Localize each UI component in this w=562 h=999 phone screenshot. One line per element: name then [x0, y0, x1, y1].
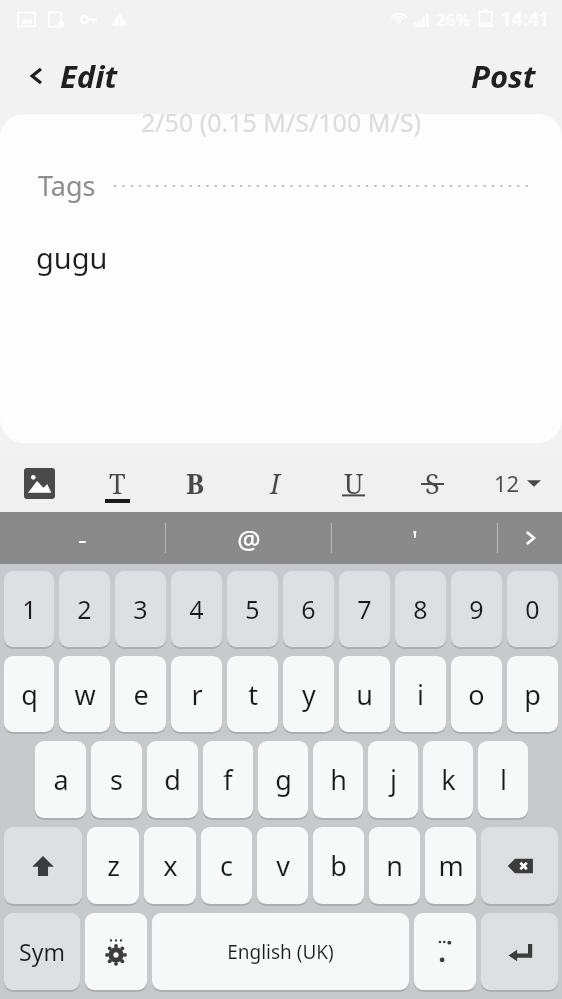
staticText: @ [237, 521, 261, 556]
staticText: j [390, 761, 397, 798]
staticText: S [425, 465, 440, 502]
staticText: l [500, 761, 507, 798]
button[interactable]: S [393, 454, 472, 512]
button[interactable]: s [91, 741, 142, 818]
staticText: gugu [36, 238, 108, 277]
button[interactable]: j [368, 741, 418, 818]
button[interactable]: T [78, 454, 156, 512]
staticText: e [133, 676, 149, 713]
staticText: q [21, 676, 38, 713]
staticText: B [186, 465, 205, 502]
button[interactable]: 7 [339, 571, 390, 647]
button[interactable]: x [144, 827, 196, 904]
staticText: 26% [436, 8, 470, 31]
button[interactable]: U [314, 454, 393, 512]
button[interactable]: v [257, 827, 308, 904]
button[interactable]: b [313, 827, 364, 904]
button[interactable]: More suggestions [498, 512, 562, 564]
staticText: c [220, 847, 233, 884]
button[interactable]: Enter [481, 913, 558, 990]
button[interactable]: y [283, 656, 334, 732]
staticText: w [74, 676, 96, 713]
button[interactable]: B [156, 454, 235, 512]
button[interactable]: l [478, 741, 528, 818]
button[interactable]: Sym [4, 913, 80, 990]
button[interactable]: n [369, 827, 420, 904]
staticText: 1 [22, 592, 37, 626]
button[interactable]: Post [451, 47, 562, 105]
staticText: 6 [301, 592, 316, 626]
staticText: i [417, 676, 424, 713]
staticText: u [356, 676, 373, 713]
staticText: k [441, 761, 456, 798]
staticText: o [468, 676, 485, 713]
button[interactable]: English (UK) [152, 913, 409, 990]
staticText: s [110, 761, 123, 798]
button[interactable]: Shift [4, 827, 82, 904]
button[interactable]: k [423, 741, 473, 818]
button[interactable]: g [258, 741, 308, 818]
button[interactable]: w [59, 656, 110, 732]
other: Back [26, 65, 48, 87]
button[interactable]: d [147, 741, 198, 818]
button[interactable]: a [35, 741, 86, 818]
button[interactable]: 2/50 (0.15 M/S/100 M/S) [0, 114, 562, 443]
button[interactable]: Period [414, 913, 476, 990]
staticText: 14:41 [501, 6, 550, 32]
button[interactable]: p [507, 656, 558, 732]
staticText: ' [412, 521, 418, 556]
staticText: Post [471, 55, 536, 97]
button[interactable]: o [451, 656, 502, 732]
staticText: z [107, 847, 120, 884]
button[interactable]: e [115, 656, 166, 732]
button[interactable]: m [425, 827, 476, 904]
button[interactable]: 6 [283, 571, 334, 647]
button[interactable]: Backspace [481, 827, 558, 904]
button[interactable]: z [87, 827, 139, 904]
staticText: 7 [357, 592, 372, 626]
staticText: h [330, 761, 347, 798]
staticText: T [109, 465, 126, 502]
button[interactable]: u [339, 656, 390, 732]
staticText: x [163, 847, 178, 884]
button[interactable]: - [0, 512, 165, 564]
button[interactable]: ' [332, 512, 497, 564]
button[interactable]: I [235, 454, 314, 512]
button[interactable]: 1 [4, 571, 54, 647]
button[interactable]: q [4, 656, 54, 732]
staticText: g [275, 761, 292, 798]
button[interactable]: h [313, 741, 363, 818]
staticText: English (UK) [227, 939, 334, 965]
button[interactable]: 4 [171, 571, 222, 647]
button[interactable]: t [227, 656, 278, 732]
button[interactable]: f [203, 741, 253, 818]
button[interactable]: 2 [59, 571, 110, 647]
button[interactable]: 9 [451, 571, 502, 647]
staticText: b [330, 847, 347, 884]
staticText: v [276, 847, 290, 884]
staticText: I [270, 465, 280, 502]
button[interactable]: @ [166, 512, 331, 564]
staticText: 2/50 (0.15 M/S/100 M/S) [141, 114, 421, 139]
staticText: Edit [60, 55, 118, 97]
staticText: U [344, 465, 364, 502]
staticText: n [386, 847, 403, 884]
button[interactable]: Insert image [0, 454, 78, 512]
button[interactable]: 8 [395, 571, 446, 647]
button[interactable]: 3 [115, 571, 166, 647]
staticText: r [191, 676, 203, 713]
staticText: Tags [38, 167, 96, 204]
staticText: f [223, 761, 233, 798]
button[interactable]: Keyboard settings [85, 913, 147, 990]
button[interactable]: i [395, 656, 446, 732]
button[interactable]: r [171, 656, 222, 732]
staticText: m [438, 847, 464, 884]
staticText: y [302, 676, 316, 713]
button[interactable]: 12 [472, 454, 562, 512]
button[interactable]: 0 [507, 571, 558, 647]
button[interactable]: 5 [227, 571, 278, 647]
button[interactable]: c [201, 827, 252, 904]
staticText: 9 [469, 592, 484, 626]
button[interactable]: Back [0, 47, 134, 105]
staticText: d [164, 761, 181, 798]
